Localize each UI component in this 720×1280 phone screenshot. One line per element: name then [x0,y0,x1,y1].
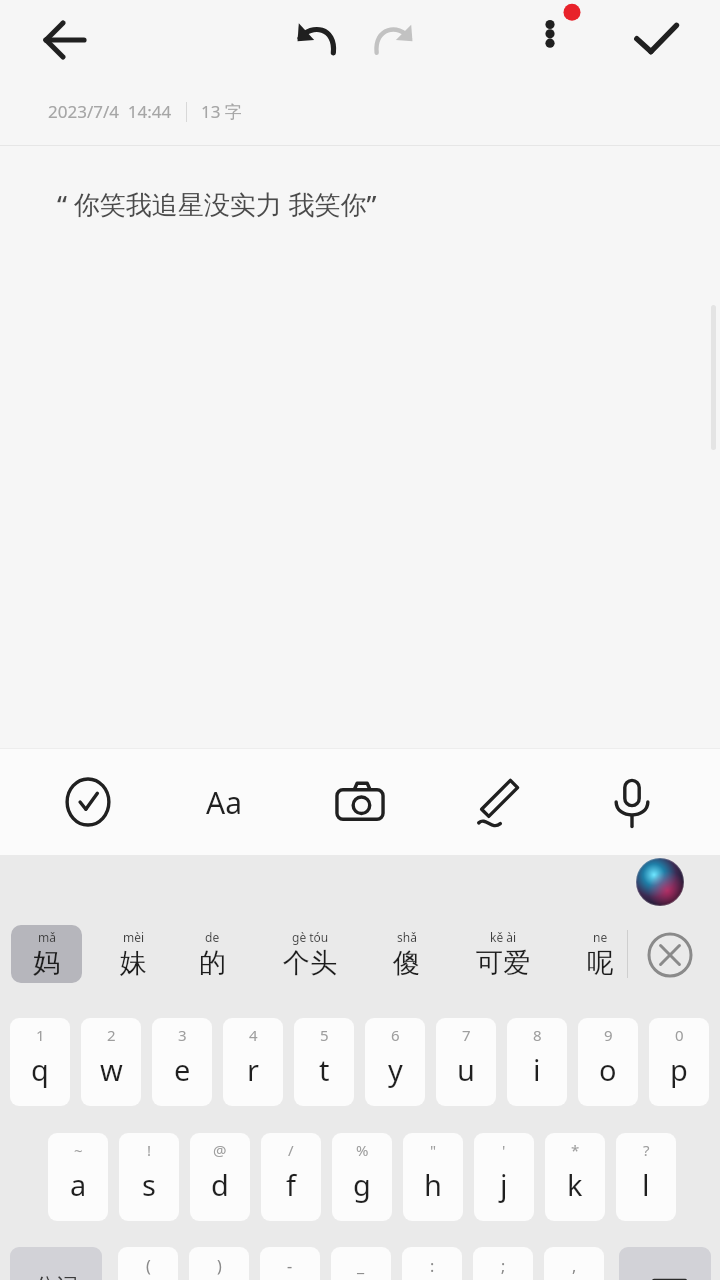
staticText: 2023/7/4 14:44 [48,100,172,123]
button[interactable]: : [402,1247,462,1280]
staticText: * [571,1140,580,1160]
staticText: kě ài [490,929,517,945]
button[interactable]: ~ [48,1133,108,1221]
staticText: j [500,1165,508,1204]
staticText: gè tóu [292,929,329,945]
button[interactable]: Close candidates [646,931,694,979]
staticText: mèi [123,929,145,945]
button[interactable]: Back [24,8,104,72]
button[interactable]: - [260,1247,320,1280]
button[interactable]: 6 [365,1018,425,1106]
button[interactable]: Format text [188,766,260,838]
staticText: p [670,1050,688,1089]
button[interactable]: 2 [81,1018,141,1106]
staticText: / [288,1140,294,1160]
staticText: “ 你笑我追星没实力 我笑你” [57,186,377,222]
button[interactable]: 1 [10,1018,70,1106]
staticText: t [319,1050,330,1089]
button[interactable]: % [332,1133,392,1221]
staticText: 可爱 [476,946,530,980]
button[interactable]: More options [518,0,582,72]
button[interactable]: shǎ [375,925,437,983]
staticText: k [567,1165,583,1204]
staticText: 0 [675,1025,684,1045]
button[interactable]: 8 [507,1018,567,1106]
staticText: 呢 [587,946,614,980]
staticText: l [642,1165,650,1204]
staticText: de [205,929,220,945]
staticText: 妈 [33,946,60,980]
staticText: ~ [74,1140,83,1160]
staticText: mǎ [38,929,56,945]
button[interactable]: ? [616,1133,676,1221]
button[interactable]: Backspace [619,1247,711,1280]
button[interactable]: Done [624,8,688,72]
button[interactable]: 9 [578,1018,638,1106]
staticText: u [457,1050,475,1089]
button[interactable]: Camera [324,766,396,838]
staticText: 1 [36,1025,45,1045]
button[interactable]: 5 [294,1018,354,1106]
staticText: 傻 [393,946,420,980]
button[interactable]: gè tóu [262,925,358,983]
button[interactable]: " [403,1133,463,1221]
button[interactable]: Undo [286,8,350,72]
button[interactable]: * [545,1133,605,1221]
staticText: 5 [320,1025,329,1045]
staticText: ' [502,1140,506,1160]
button[interactable]: Redo [360,8,424,72]
staticText: r [247,1050,259,1089]
staticText: ne [593,929,608,945]
staticText: - [287,1255,293,1277]
staticText: _ [357,1255,365,1277]
staticText: 6 [391,1025,400,1045]
staticText: 4 [249,1025,258,1045]
button[interactable]: ; [473,1247,533,1280]
staticText: shǎ [397,929,417,945]
button[interactable]: @ [190,1133,250,1221]
button[interactable]: de [181,925,243,983]
staticText: @ [213,1140,227,1160]
button[interactable]: Checklist [52,766,124,838]
staticText: 3 [178,1025,187,1045]
button[interactable]: ) [189,1247,249,1280]
staticText: ? [643,1140,650,1160]
staticText: ( [146,1255,151,1277]
staticText: % [356,1140,369,1160]
staticText: " [430,1140,437,1160]
button[interactable]: ( [118,1247,178,1280]
button[interactable]: ' [474,1133,534,1221]
staticText: 13 字 [201,100,242,123]
button[interactable]: Draw [460,766,532,838]
button[interactable]: ne [569,925,631,983]
staticText: f [286,1165,296,1204]
button[interactable]: / [261,1133,321,1221]
staticText: 2 [107,1025,116,1045]
staticText: 分词 [34,1273,78,1280]
staticText: 妹 [120,946,147,980]
button[interactable]: 7 [436,1018,496,1106]
button[interactable]: mèi [102,925,164,983]
staticText: ! [147,1140,152,1160]
button[interactable]: _ [331,1247,391,1280]
button[interactable]: 分词 [10,1247,102,1280]
staticText: s [142,1165,156,1204]
staticText: h [424,1165,442,1204]
button[interactable]: mǎ [15,925,77,983]
button[interactable]: Voice assistant [636,858,684,906]
staticText: 个头 [283,946,337,980]
staticText: q [31,1050,49,1089]
button[interactable]: 3 [152,1018,212,1106]
button[interactable]: 0 [649,1018,709,1106]
button[interactable]: kě ài [455,925,551,983]
staticText: Aa [206,782,242,823]
button[interactable]: Voice [596,766,668,838]
button[interactable]: , [544,1247,604,1280]
staticText: ; [501,1255,506,1277]
button[interactable]: ! [119,1133,179,1221]
staticText: : [430,1255,435,1277]
staticText: w [100,1050,123,1089]
staticText: y [388,1050,403,1089]
button[interactable]: 4 [223,1018,283,1106]
staticText: 的 [199,946,226,980]
